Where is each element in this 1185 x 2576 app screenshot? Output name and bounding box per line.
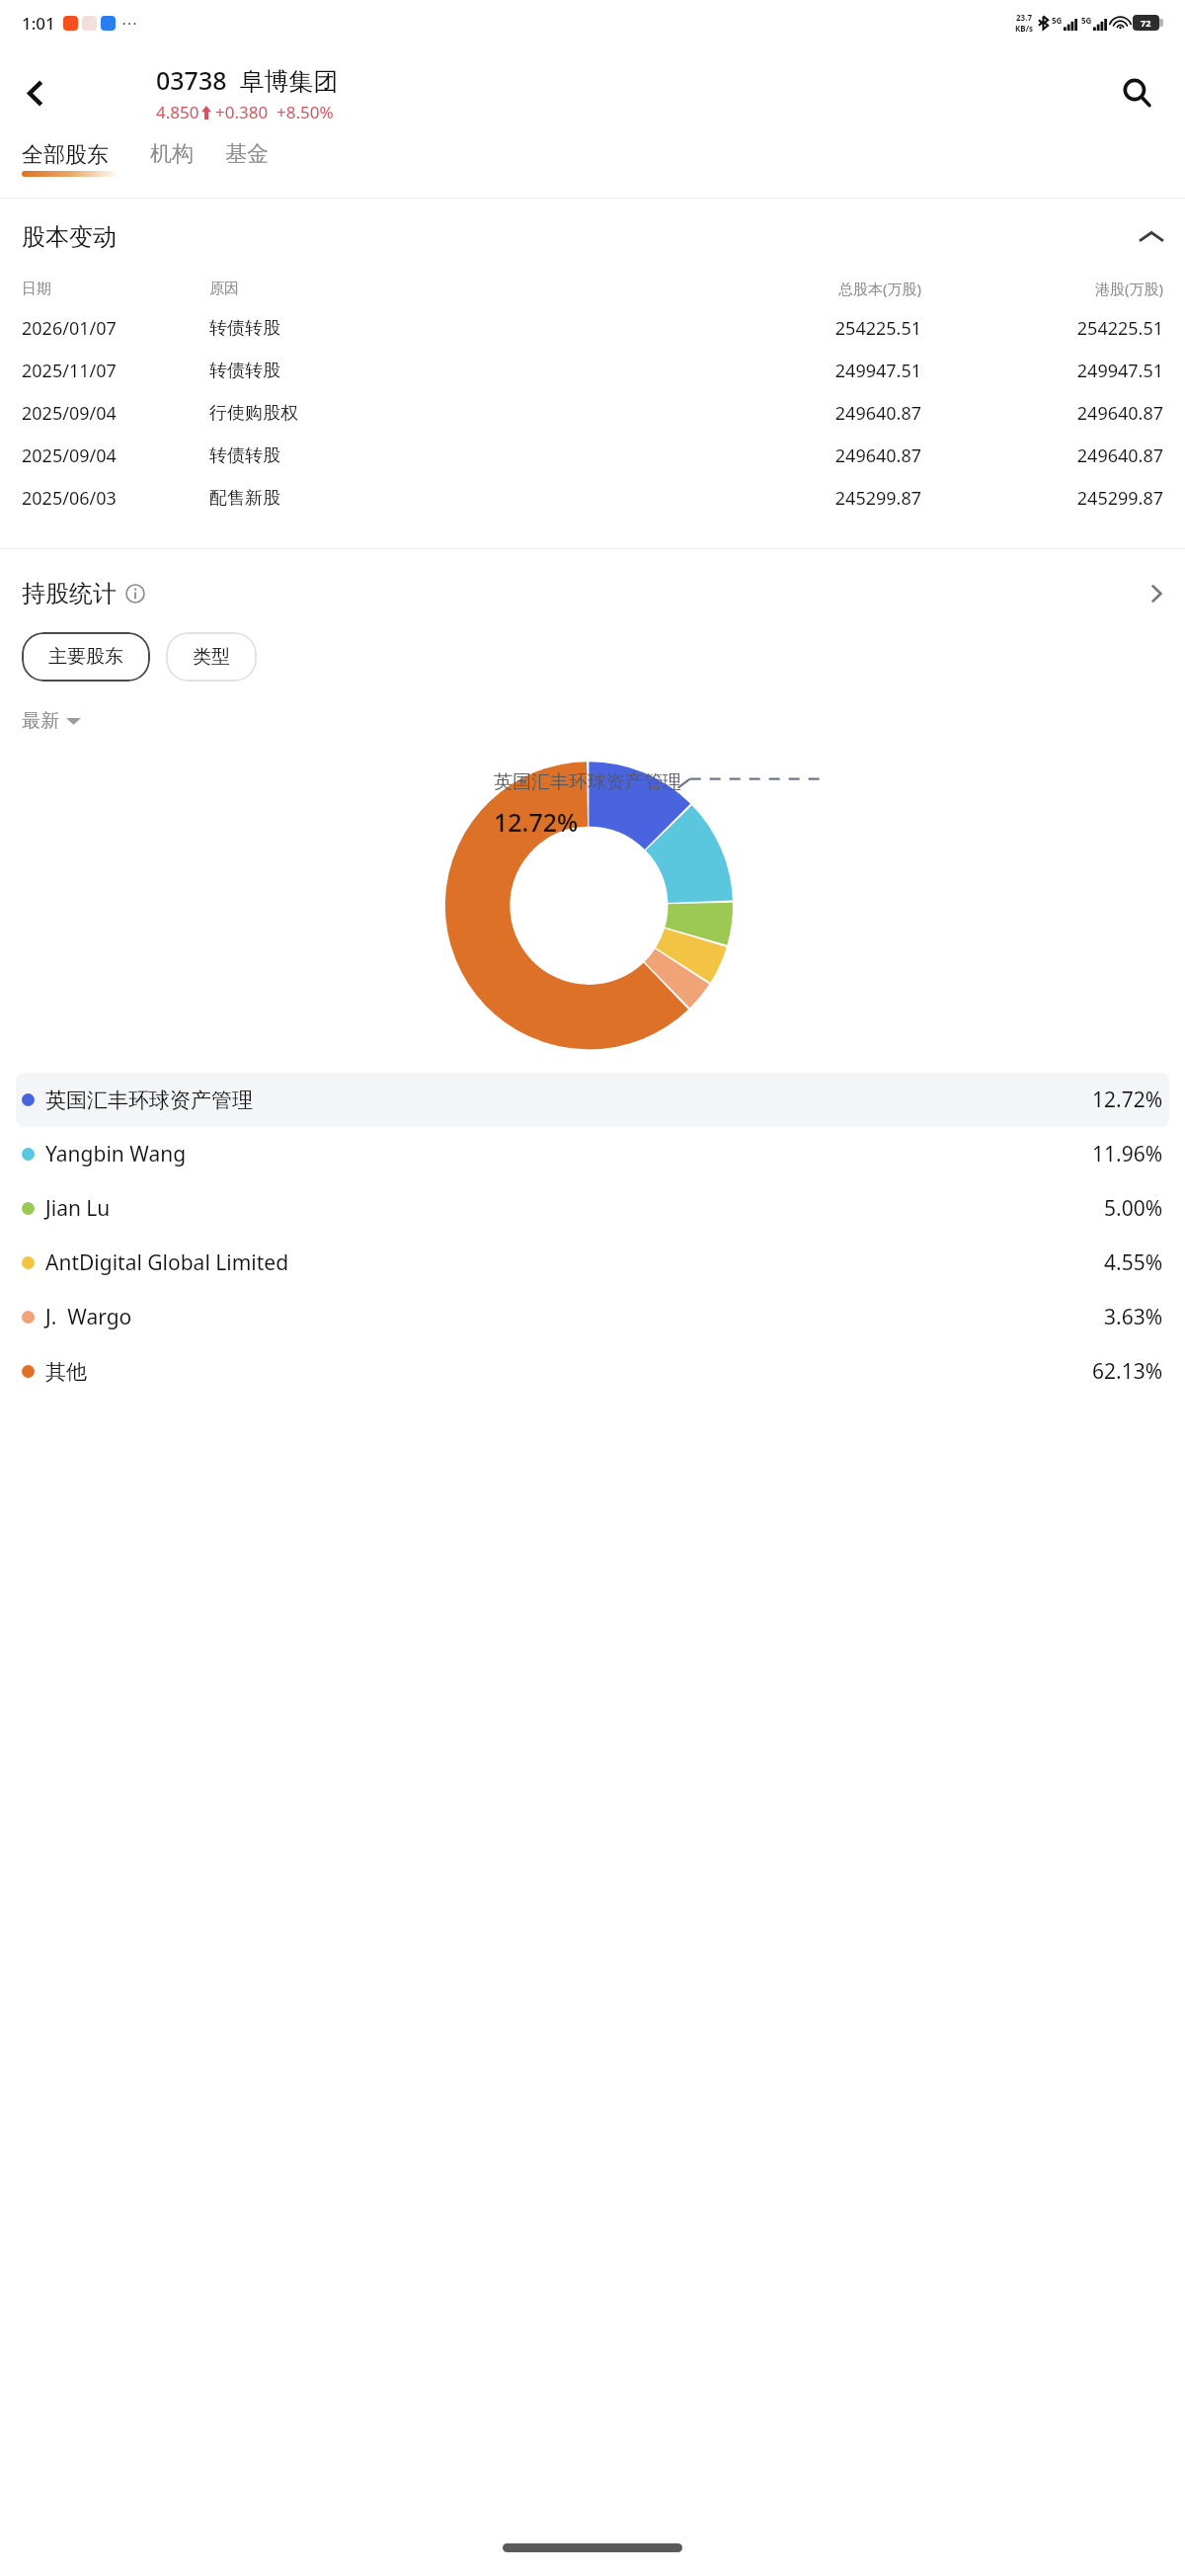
staticText: 254225.51 [921,316,1163,341]
staticText: 3.63% [1104,1303,1163,1331]
staticText: 5G [1052,15,1063,26]
staticText: 4.850 [156,101,199,123]
staticText: 2026/01/07 [22,316,209,341]
staticText: 254225.51 [382,316,921,341]
staticText: 249640.87 [921,443,1163,468]
button[interactable]: AntDigital Global Limited [16,1236,1169,1290]
staticText: 转债转股 [209,444,382,467]
button[interactable]: Yangbin Wang [16,1127,1169,1181]
staticText: 行使购股权 [209,402,382,425]
staticText: 港股(万股) [921,279,1163,298]
staticText: 2025/11/07 [22,359,209,383]
staticText: AntDigital Global Limited [45,1248,289,1277]
staticText: 日期 [22,280,209,298]
staticText: 其他 [45,1359,87,1385]
staticText: 英国汇丰环球资产管理 [45,1087,253,1113]
staticText: 5.00% [1104,1194,1163,1223]
staticText: 2025/09/04 [22,401,209,426]
button[interactable]: 其他 [16,1344,1169,1399]
staticText: 72 [1141,17,1151,29]
staticText: 245299.87 [382,486,921,511]
button[interactable]: 英国汇丰环球资产管理 [16,1073,1169,1127]
staticText: 2025/06/03 [22,486,209,511]
staticText: 持股统计 [22,579,117,608]
staticText: +0.380 +8.50% [215,101,334,123]
button[interactable]: 最新 [22,709,81,733]
staticText: J. Wargo [45,1303,132,1331]
staticText: 12.72% [494,805,579,839]
staticText: 249640.87 [921,401,1163,426]
button[interactable]: Jian Lu [16,1181,1169,1236]
button[interactable]: 主要股东 [22,632,150,682]
staticText: 11.96% [1092,1140,1163,1168]
button[interactable]: 基金 [225,140,269,168]
staticText: 4.55% [1104,1248,1163,1277]
button[interactable]: J. Wargo [16,1290,1169,1344]
staticText: 机构 [150,140,194,168]
staticText: 最新 [22,709,59,733]
staticText: 12.72% [1092,1086,1163,1114]
staticText: 英国汇丰环球资产管理 [494,770,681,794]
staticText: 主要股东 [48,645,123,669]
staticText: 62.13% [1092,1357,1163,1386]
staticText: 2025/09/04 [22,443,209,468]
staticText: Yangbin Wang [45,1140,187,1168]
staticText: 基金 [225,140,269,168]
button[interactable]: 股本变动 [22,222,1163,252]
button[interactable]: Search [1108,64,1165,121]
staticText: 转债转股 [209,360,382,382]
staticText: 总股本(万股) [382,279,921,298]
staticText: 全部股东 [22,141,109,169]
staticText: ⋯ [121,14,137,33]
button[interactable]: 类型 [166,632,257,682]
staticText: 249947.51 [382,359,921,383]
staticText: 249640.87 [382,443,921,468]
staticText: Jian Lu [45,1194,111,1223]
staticText: 原因 [209,280,382,298]
button[interactable]: 持股统计 [22,579,1163,608]
staticText: KB/s [1015,23,1033,34]
button[interactable]: 机构 [150,140,194,168]
staticText: 转债转股 [209,317,382,340]
staticText: 1:01 [22,12,55,35]
staticText: 23.7 [1016,12,1032,23]
staticText: 249947.51 [921,359,1163,383]
staticText: 配售新股 [209,487,382,510]
staticText: 245299.87 [921,486,1163,511]
button[interactable]: Back [6,64,63,121]
staticText: 249640.87 [382,401,921,426]
staticText: 类型 [193,645,230,669]
staticText: 03738 阜博集团 [156,63,339,97]
staticText: 5G [1081,15,1092,26]
staticText: 股本变动 [22,222,117,252]
button[interactable]: 全部股东 [22,141,118,177]
